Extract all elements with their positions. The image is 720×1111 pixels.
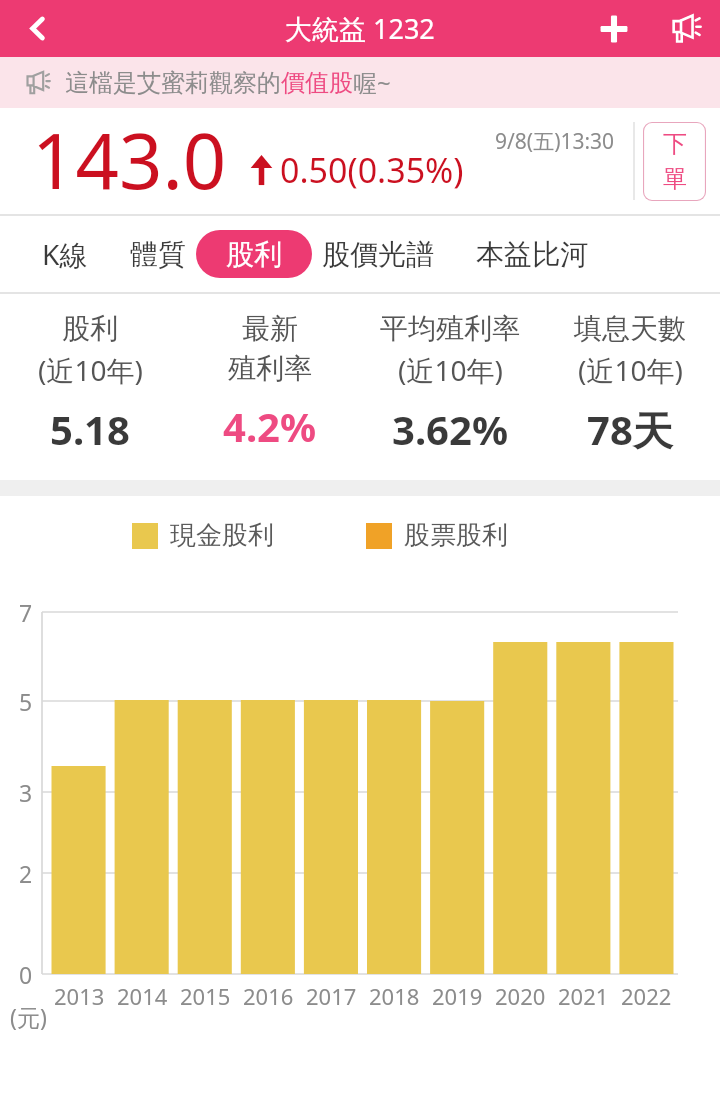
button[interactable]: 股利	[196, 230, 312, 278]
staticText: (近10年)	[398, 351, 503, 389]
staticText: K線	[42, 235, 88, 273]
staticText: 5.18	[50, 402, 130, 456]
staticText: 現金股利	[170, 519, 274, 552]
button[interactable]: 下	[643, 122, 706, 201]
staticText: 單	[663, 164, 687, 194]
button[interactable]: 這檔是艾蜜莉觀察的	[0, 57, 720, 108]
staticText: 2016	[243, 981, 294, 1011]
button[interactable]: 平均殖利率	[360, 294, 540, 480]
button[interactable]: Back	[0, 0, 74, 57]
staticText: 股票股利	[404, 519, 508, 552]
staticText: 這檔是艾蜜莉觀察的	[65, 68, 281, 98]
staticText: 2020	[495, 981, 546, 1011]
staticText: 78天	[587, 402, 673, 457]
staticText: 5	[19, 686, 33, 717]
staticText: (近10年)	[38, 351, 143, 389]
staticText: 9/8(五)13:30	[495, 127, 615, 156]
staticText: 3.62%	[392, 402, 508, 456]
staticText: 3	[19, 777, 33, 808]
button[interactable]: 本益比河	[470, 230, 594, 278]
staticText: 143.0	[32, 108, 227, 210]
staticText: 價值股	[281, 68, 353, 98]
staticText: 2019	[432, 981, 483, 1011]
staticText: 體質	[130, 237, 186, 272]
staticText: 股價光譜	[322, 237, 434, 272]
button[interactable]: K線	[36, 230, 94, 278]
button[interactable]: 股利	[0, 294, 180, 480]
button[interactable]: 最新	[180, 294, 360, 480]
staticText: 2017	[306, 981, 357, 1011]
staticText: 2018	[369, 981, 420, 1011]
staticText: 喔~	[353, 66, 391, 99]
staticText: 股利	[62, 311, 118, 346]
staticText: 2022	[621, 981, 672, 1011]
staticText: (元)	[10, 1001, 47, 1032]
button[interactable]: 體質	[124, 230, 192, 278]
staticText: 最新	[242, 311, 298, 346]
button[interactable]: 填息天數	[540, 294, 720, 480]
staticText: (近10年)	[578, 351, 683, 389]
button[interactable]: 股價光譜	[316, 230, 440, 278]
staticText: 填息天數	[574, 311, 686, 346]
staticText: 4.2%	[223, 399, 317, 453]
staticText: 2021	[558, 981, 609, 1011]
staticText: 下	[663, 129, 687, 159]
button[interactable]: Announcements	[648, 0, 720, 57]
staticText: 平均殖利率	[380, 311, 520, 346]
staticText: 殖利率	[228, 351, 312, 386]
staticText: 0	[19, 959, 33, 990]
staticText: 2013	[54, 981, 105, 1011]
staticText: 本益比河	[476, 237, 588, 272]
staticText: 股利	[226, 237, 282, 272]
staticText: 2014	[117, 981, 168, 1011]
staticText: 0.50(0.35%)	[280, 147, 464, 193]
button[interactable]: Add	[580, 0, 648, 57]
staticText: 大統益 1232	[285, 10, 435, 47]
staticText: 2	[19, 858, 33, 889]
staticText: 7	[19, 597, 33, 628]
staticText: 2015	[180, 981, 231, 1011]
